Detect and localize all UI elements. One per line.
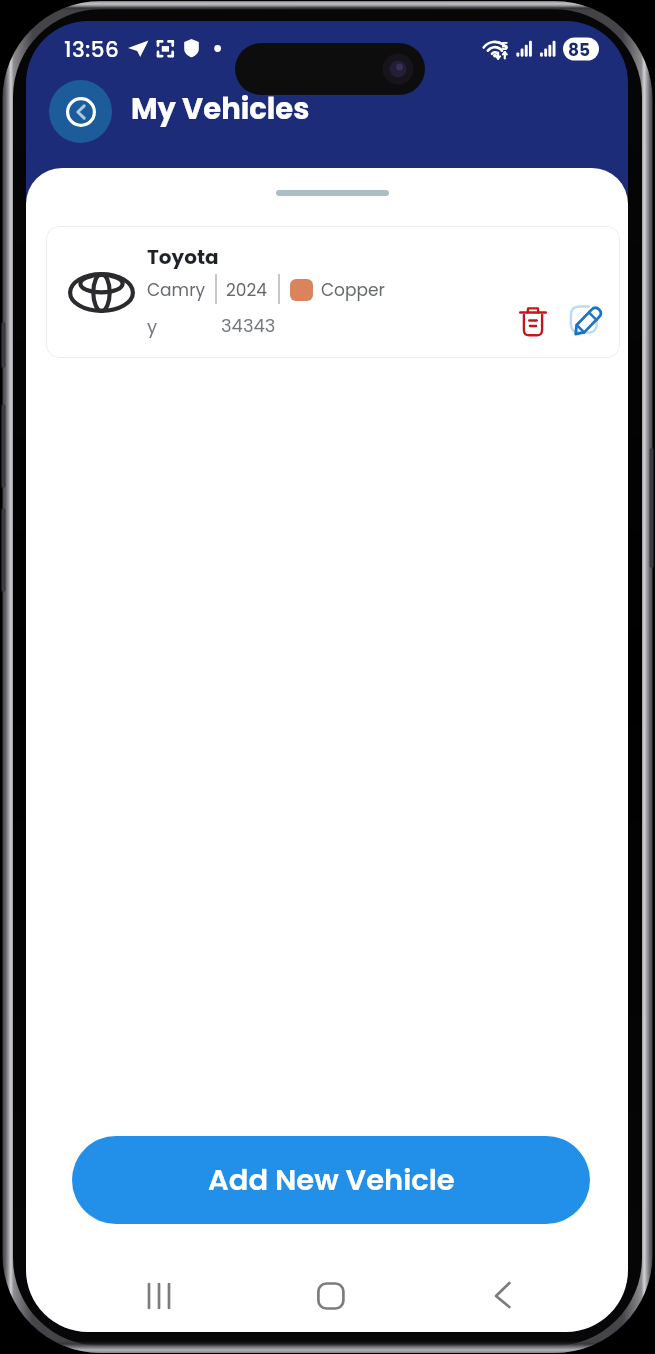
staticText: 85 [568,38,591,62]
button[interactable]: Add New Vehicle [72,1136,590,1224]
button[interactable]: Back [49,80,112,143]
staticText: y [147,314,158,339]
staticText: 2024 [226,278,267,302]
staticText: 13:56 [64,34,120,64]
staticText: 34343 [221,313,276,338]
staticText: Add New Vehicle [208,1160,455,1201]
staticText: Toyota [147,243,219,271]
button[interactable]: Toyota [46,226,620,358]
button[interactable]: Edit [563,298,609,344]
button[interactable]: Delete [510,298,556,344]
staticText: Camry [147,278,206,302]
staticText: Copper [321,278,385,302]
staticText: My Vehicles [131,89,310,130]
staticText: 5 [501,38,509,53]
